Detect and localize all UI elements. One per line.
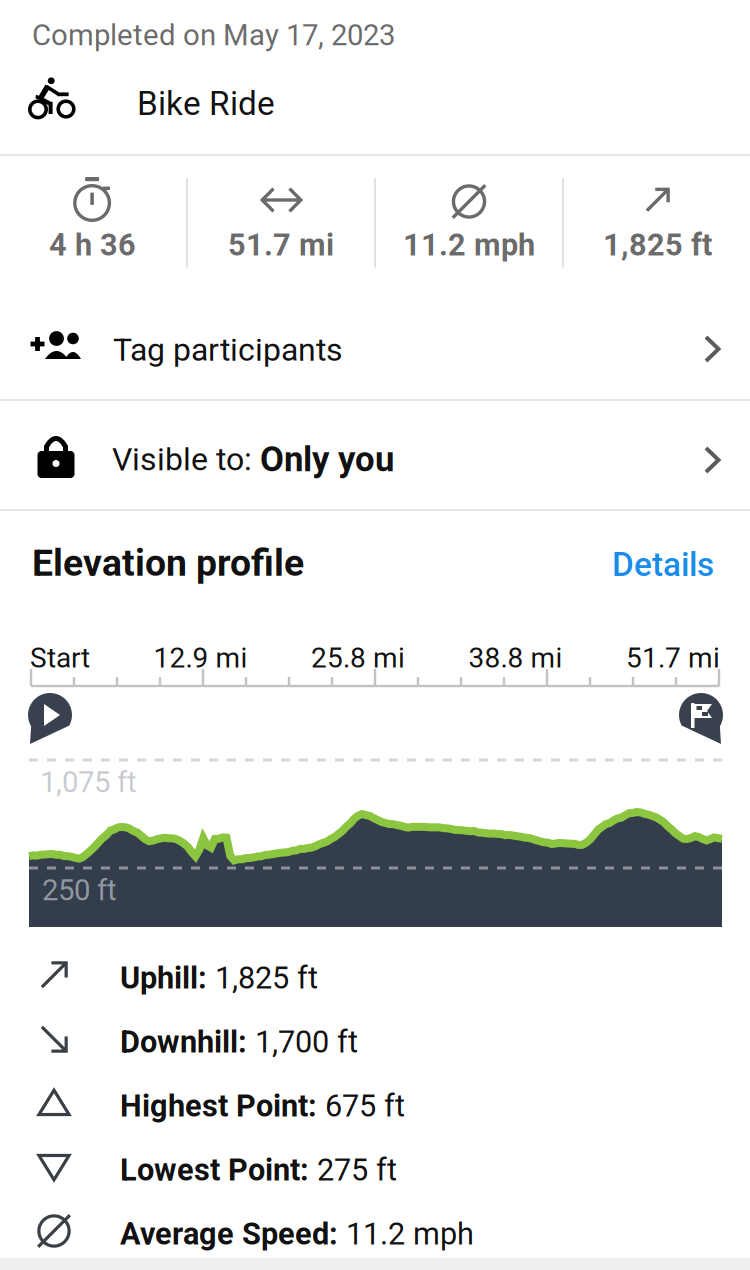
- staticText: 38.8 mi: [468, 642, 562, 674]
- staticText: 1,700 ft: [255, 1024, 358, 1060]
- staticText: 25.8 mi: [311, 642, 405, 674]
- button[interactable]: Tag participants: [0, 290, 750, 400]
- staticText: 11.2 mph: [403, 227, 535, 263]
- button[interactable]: Visible to:: [0, 401, 750, 511]
- staticText: Start: [30, 642, 90, 674]
- staticText: Downhill:: [120, 1024, 255, 1060]
- staticText: Visible to:: [112, 441, 260, 478]
- staticText: 51.7 mi: [228, 227, 334, 263]
- staticText: 675 ft: [325, 1088, 405, 1124]
- staticText: Average Speed:: [120, 1216, 346, 1252]
- staticText: Completed on May 17, 2023: [32, 18, 395, 52]
- staticText: 11.2 mph: [346, 1216, 474, 1252]
- button[interactable]: Details: [604, 539, 722, 590]
- staticText: 51.7 mi: [626, 642, 720, 674]
- staticText: 1,075 ft: [40, 765, 137, 799]
- staticText: 275 ft: [317, 1152, 397, 1188]
- staticText: Tag participants: [113, 331, 343, 368]
- staticText: Uphill:: [120, 960, 215, 996]
- staticText: 250 ft: [42, 873, 117, 907]
- staticText: 12.9 mi: [153, 642, 247, 674]
- staticText: Only you: [260, 439, 394, 480]
- staticText: Details: [612, 545, 714, 584]
- staticText: Lowest Point:: [120, 1152, 317, 1188]
- staticText: 1,825 ft: [603, 227, 712, 263]
- staticText: Highest Point:: [120, 1088, 325, 1124]
- staticText: Elevation profile: [32, 541, 304, 585]
- staticText: 1,825 ft: [215, 960, 318, 996]
- staticText: Bike Ride: [137, 84, 275, 123]
- staticText: 4 h 36: [49, 227, 136, 263]
